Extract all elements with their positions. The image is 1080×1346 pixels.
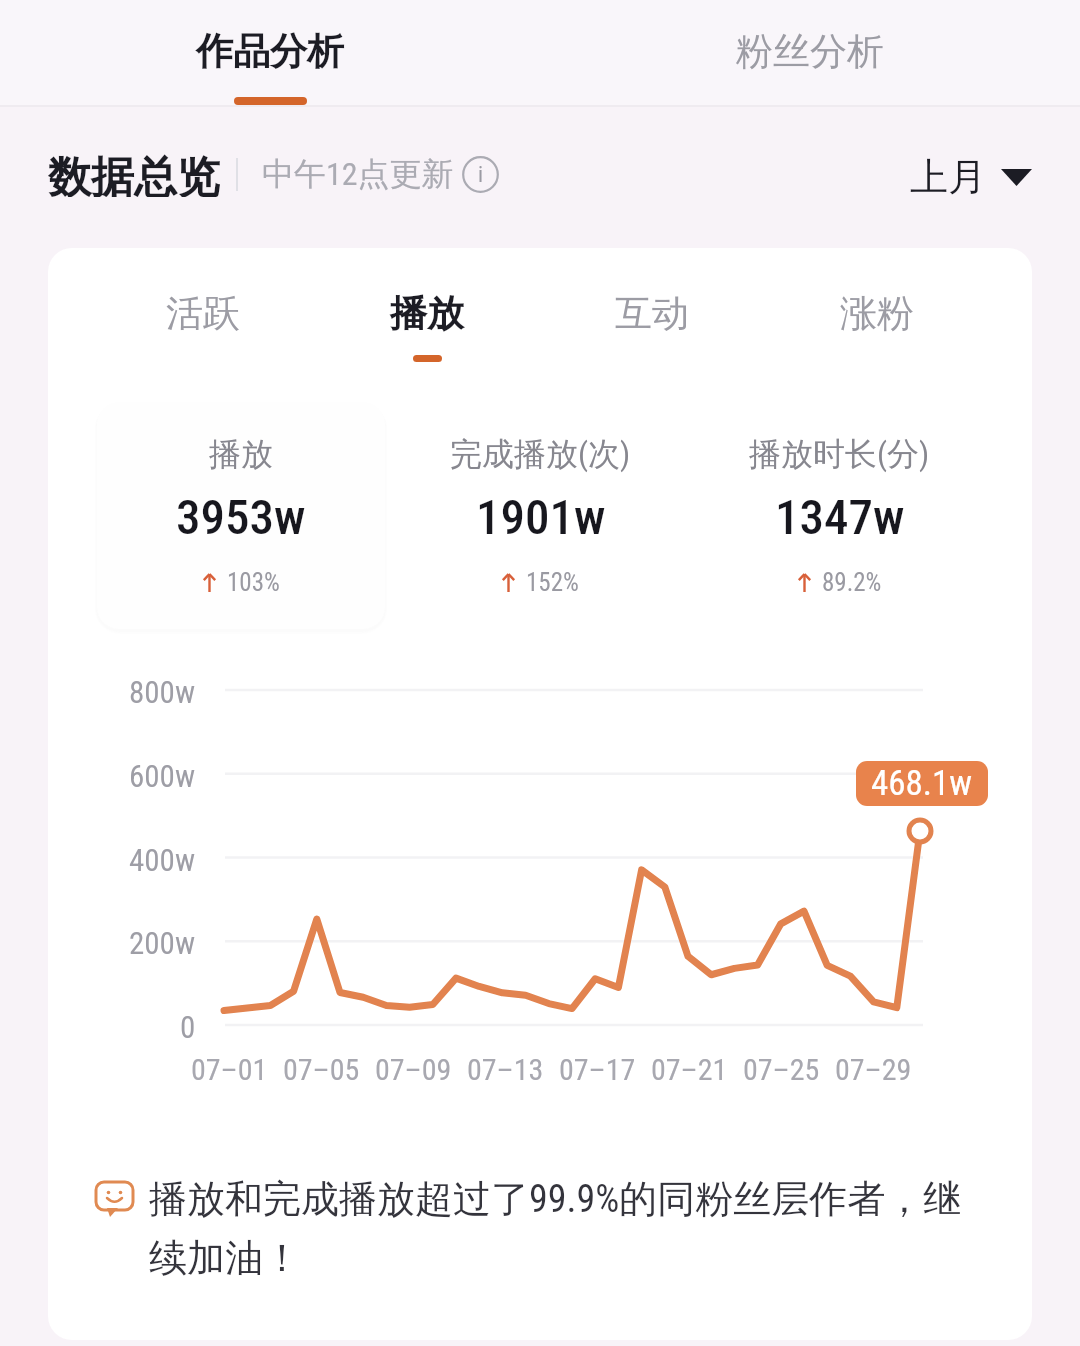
staticText: 互动 <box>615 290 689 337</box>
staticText: 3953w <box>176 489 306 546</box>
button[interactable]: Info <box>462 156 499 193</box>
staticText: 07–05 <box>283 1052 360 1087</box>
staticText: 完成播放(次) <box>450 434 631 474</box>
staticText: 103% <box>227 568 280 597</box>
staticText: 播放 <box>209 434 273 474</box>
button[interactable]: 作品分析 <box>0 0 540 114</box>
staticText: 涨粉 <box>840 290 914 337</box>
staticText: 播放和完成播放超过了99.9%的同粉丝层作者，继续加油！ <box>149 1175 996 1282</box>
button[interactable]: 互动 <box>539 290 764 362</box>
staticText: 400w <box>129 842 196 878</box>
staticText: 中午12点更新 <box>262 154 454 194</box>
staticText: 粉丝分析 <box>736 28 884 75</box>
staticText: 07–13 <box>467 1052 544 1087</box>
staticText: 1901w <box>476 489 606 546</box>
staticText: 数据总览 <box>48 151 220 197</box>
staticText: 07–09 <box>375 1052 452 1087</box>
staticText: 600w <box>129 758 196 794</box>
button[interactable]: 播放 <box>315 290 539 362</box>
staticText: 200w <box>129 925 196 961</box>
staticText: 播放 <box>390 290 464 337</box>
staticText: 1347w <box>775 489 905 546</box>
staticText: 07–21 <box>651 1052 728 1087</box>
button[interactable]: 468.1w <box>856 761 988 806</box>
staticText: 播放时长(分) <box>749 434 930 474</box>
button[interactable]: 完成播放(次) <box>397 402 684 629</box>
staticText: 89.2% <box>822 568 882 597</box>
staticText: 800w <box>129 674 196 710</box>
button[interactable]: 粉丝分析 <box>540 0 1080 114</box>
staticText: 上月 <box>910 153 986 199</box>
button[interactable]: 活跃 <box>91 290 315 362</box>
staticText: 07–29 <box>835 1052 912 1087</box>
staticText: 07–25 <box>743 1052 820 1087</box>
staticText: i <box>478 162 484 188</box>
button[interactable]: 播放时长(分) <box>696 402 983 629</box>
button[interactable]: 播放 <box>97 402 385 629</box>
button[interactable]: 上月 <box>910 151 1041 197</box>
staticText: 07–01 <box>191 1052 268 1087</box>
button[interactable]: 涨粉 <box>764 290 989 362</box>
staticText: 468.1w <box>871 763 973 804</box>
staticText: 152% <box>526 568 579 597</box>
staticText: 活跃 <box>166 290 240 337</box>
staticText: 07–17 <box>559 1052 636 1087</box>
staticText: 作品分析 <box>196 28 344 75</box>
staticText: 0 <box>180 1009 196 1045</box>
